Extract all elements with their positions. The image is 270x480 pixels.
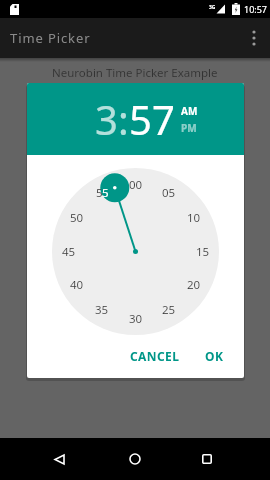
staticText: 30 [129,311,143,327]
staticText: 57 [129,92,175,146]
button[interactable] [238,18,270,58]
button[interactable]: OK [197,340,232,372]
staticText: 20 [187,277,201,293]
staticText: 5 [102,185,109,201]
staticText: 50 [70,210,84,226]
staticText: 10 [187,210,201,226]
button[interactable] [39,438,79,480]
staticText: 25 [162,302,176,318]
button[interactable] [187,438,227,480]
staticText: Time Picker [10,29,91,47]
staticText: 10:57 [244,3,268,15]
staticText: 3G [209,4,216,11]
staticText: 40 [70,277,84,293]
staticText: 5 [96,185,103,201]
staticText: 45 [62,244,76,260]
staticText: 00 [129,177,143,193]
staticText: CANCEL [130,348,180,364]
staticText: 35 [95,302,109,318]
staticText: Neurobin Time Picker Example [52,65,218,81]
staticText: AM [181,104,198,118]
staticText: 05 [162,185,176,201]
staticText: 3: [95,92,129,146]
button[interactable]: CANCEL [122,340,188,372]
staticText: OK [205,348,224,364]
staticText: 15 [196,244,210,260]
button[interactable] [115,438,155,480]
staticText: PM [181,121,197,135]
